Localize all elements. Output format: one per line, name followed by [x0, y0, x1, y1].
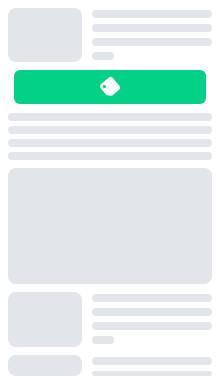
button[interactable] [8, 292, 212, 347]
button[interactable] [8, 355, 212, 376]
button[interactable]: Offers [14, 70, 206, 104]
button[interactable] [8, 8, 212, 62]
